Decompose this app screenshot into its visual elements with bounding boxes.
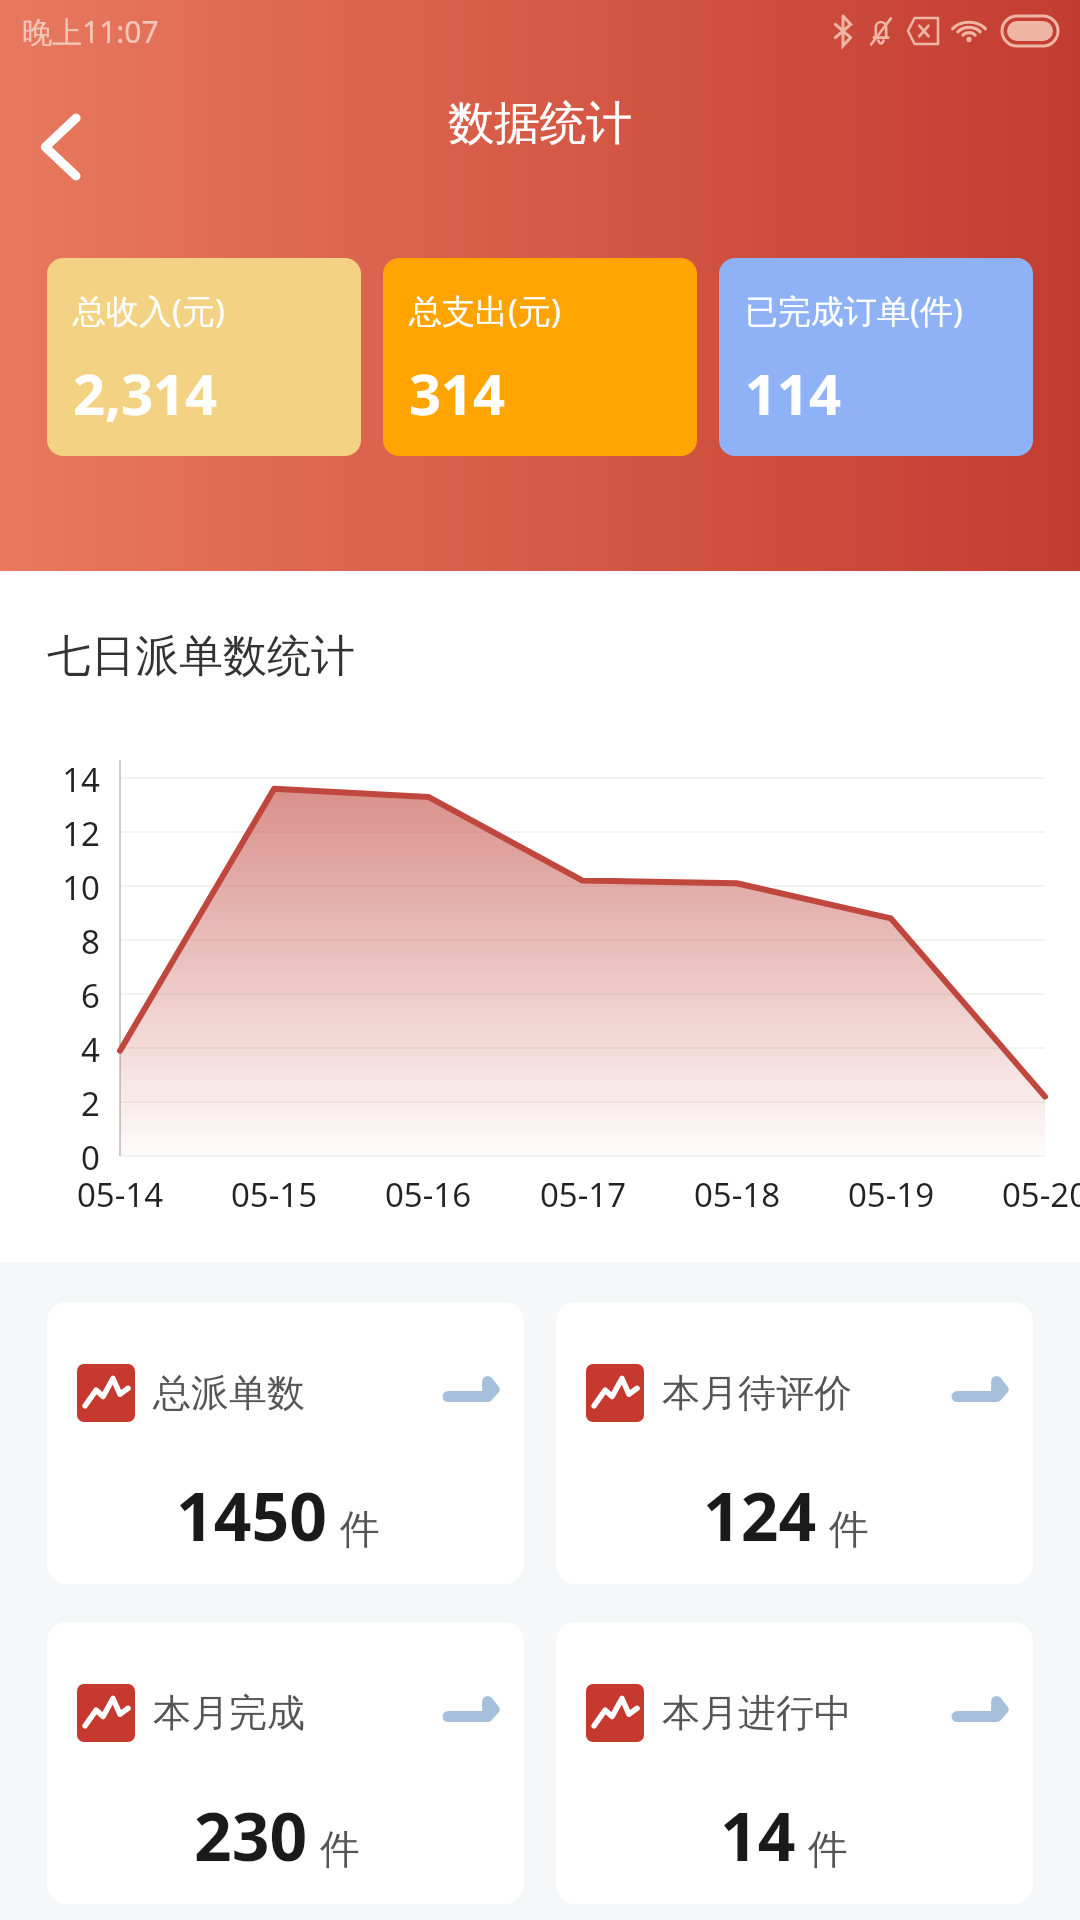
staticText: 件 bbox=[808, 1824, 848, 1874]
staticText: 14 bbox=[720, 1790, 796, 1880]
staticText: 七日派单数统计 bbox=[47, 629, 355, 684]
staticText: 10 bbox=[0, 865, 100, 910]
staticText: 8 bbox=[0, 919, 100, 964]
staticText: 数据统计 bbox=[0, 95, 1080, 153]
staticText: 晚上11:07 bbox=[22, 11, 159, 52]
staticText: 05-16 bbox=[353, 1172, 503, 1217]
staticText: 05-17 bbox=[508, 1172, 658, 1217]
staticText: 本月完成 bbox=[153, 1689, 305, 1737]
staticText: 2 bbox=[0, 1081, 100, 1126]
staticText: 4 bbox=[0, 1027, 100, 1072]
staticText: 114 bbox=[745, 355, 842, 431]
staticText: 件 bbox=[320, 1824, 360, 1874]
staticText: 05-15 bbox=[199, 1172, 349, 1217]
staticText: 05-18 bbox=[662, 1172, 812, 1217]
button[interactable]: 本月完成 bbox=[47, 1622, 524, 1904]
staticText: 2,314 bbox=[73, 355, 218, 431]
button[interactable]: 本月待评价 bbox=[556, 1302, 1033, 1584]
staticText: 件 bbox=[829, 1504, 869, 1554]
button[interactable]: 本月进行中 bbox=[556, 1622, 1033, 1904]
button[interactable]: 已完成订单(件) bbox=[719, 258, 1033, 456]
staticText: 12 bbox=[0, 811, 100, 856]
staticText: 230 bbox=[194, 1790, 308, 1880]
staticText: 0 bbox=[0, 1135, 100, 1180]
button[interactable]: 总派单数 bbox=[47, 1302, 524, 1584]
button[interactable]: 总支出(元) bbox=[383, 258, 697, 456]
staticText: 1450 bbox=[176, 1470, 328, 1560]
staticText: 314 bbox=[409, 355, 506, 431]
staticText: 总支出(元) bbox=[409, 288, 561, 333]
staticText: 总收入(元) bbox=[73, 288, 225, 333]
staticText: 总派单数 bbox=[153, 1369, 305, 1417]
staticText: 件 bbox=[340, 1504, 380, 1554]
button[interactable]: Back bbox=[22, 100, 102, 194]
staticText: 本月进行中 bbox=[662, 1689, 852, 1737]
staticText: 05-20 bbox=[970, 1172, 1080, 1217]
staticText: 14 bbox=[0, 757, 100, 802]
staticText: 本月待评价 bbox=[662, 1369, 852, 1417]
staticText: 124 bbox=[703, 1470, 817, 1560]
staticText: 05-14 bbox=[45, 1172, 195, 1217]
staticText: 6 bbox=[0, 973, 100, 1018]
staticText: 已完成订单(件) bbox=[745, 288, 963, 333]
button[interactable]: 总收入(元) bbox=[47, 258, 361, 456]
staticText: 05-19 bbox=[816, 1172, 966, 1217]
